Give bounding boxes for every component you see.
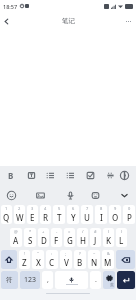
button[interactable]: / [77,228,88,247]
button[interactable]: ) [116,228,127,247]
button[interactable]: 3 [27,205,38,224]
staticText: ) [121,229,123,234]
staticText: W [16,212,24,223]
staticText: B [77,257,83,268]
staticText: & [107,251,110,256]
button[interactable]: 9 [109,205,121,224]
button[interactable]: Switch language [103,271,115,289]
button[interactable]: 8 [95,205,107,224]
staticText: @ [14,229,18,234]
button[interactable]: 7 [81,205,93,224]
button[interactable]: # [90,228,101,247]
button[interactable]: Shift [1,250,17,269]
staticText: + [42,229,45,234]
button[interactable]: , [42,271,53,289]
staticText: / [82,229,84,234]
staticText: C [49,257,55,268]
staticText: # [94,229,97,234]
staticText: M [104,257,112,268]
staticText: = [68,229,71,234]
staticText: I [100,212,103,223]
button[interactable]: : [46,250,58,269]
staticText: Z [22,257,27,268]
button[interactable]: 5 [53,205,65,224]
staticText: A [13,235,19,246]
button[interactable]: ~ [88,250,100,269]
staticText: ! [24,251,26,256]
staticText: B [8,170,14,181]
staticText: ; [65,251,67,256]
staticText: 符 [6,276,13,284]
button[interactable]: Insert [115,166,133,184]
staticText: P [127,212,132,223]
button[interactable]: Sticker [86,186,104,204]
button[interactable]: @ [10,228,22,247]
staticText: 4 [44,206,47,211]
button[interactable]: + [38,228,49,247]
staticText: 英 [110,282,114,287]
staticText: " [37,251,39,256]
button[interactable]: & [102,250,114,269]
staticText: G [67,235,73,246]
staticText: Y [71,212,76,223]
staticText: - [56,229,58,234]
button[interactable]: ( [103,228,114,247]
button[interactable]: . [90,271,101,289]
button[interactable]: Voice input [61,186,79,204]
button[interactable]: ! [19,250,30,269]
staticText: R [43,212,49,223]
button[interactable]: Numbered list [61,166,79,184]
button[interactable]: Font style [22,166,40,184]
button[interactable]: Insert image [31,186,49,204]
button[interactable]: 1 [1,205,12,224]
button[interactable]: Space [55,271,88,289]
button[interactable]: * [24,228,36,247]
staticText: O [112,212,119,223]
staticText: J [94,235,97,246]
button[interactable]: Emoji [2,186,20,204]
button[interactable]: Hide keyboard [115,186,133,204]
staticText: 9 [114,206,117,211]
staticText: ( [108,229,110,234]
staticText: 0 [128,206,131,211]
staticText: 3 [31,206,34,211]
button[interactable]: More options [119,12,136,30]
button[interactable]: 符 [1,271,18,289]
button[interactable]: 2 [14,205,25,224]
button[interactable]: Checklist [81,166,99,184]
button[interactable]: 4 [40,205,51,224]
button[interactable]: Bold [2,166,20,184]
staticText: K [106,235,112,246]
staticText: ~ [93,251,96,256]
button[interactable]: Backspace [116,250,135,269]
staticText: N [91,257,98,268]
staticText: L [119,235,124,246]
button[interactable]: 0 [123,205,135,224]
staticText: 笔记 [62,17,75,25]
staticText: T [57,212,62,223]
button[interactable]: Enter [117,271,135,289]
button[interactable]: " [32,250,44,269]
staticText: V [64,257,69,268]
staticText: E [30,212,35,223]
staticText: 18:57 [3,3,18,10]
staticText: * [29,229,32,234]
staticText: F [54,235,59,246]
staticText: 7 [86,206,89,211]
staticText: U [84,212,90,223]
button[interactable]: ; [60,250,72,269]
button[interactable]: Bulleted list [41,166,59,184]
staticText: 2 [18,206,21,211]
button[interactable]: = [64,228,75,247]
staticText: 1 [5,206,8,211]
button[interactable]: 123 [20,271,40,289]
button[interactable]: - [51,228,62,247]
button[interactable]: 6 [67,205,79,224]
staticText: Q [3,212,10,223]
staticText: 8 [100,206,103,211]
button[interactable]: ? [74,250,86,269]
button[interactable]: Back [0,12,16,30]
button[interactable]: Indent [101,166,119,184]
staticText: 5 [58,206,61,211]
staticText: ? [79,251,81,256]
